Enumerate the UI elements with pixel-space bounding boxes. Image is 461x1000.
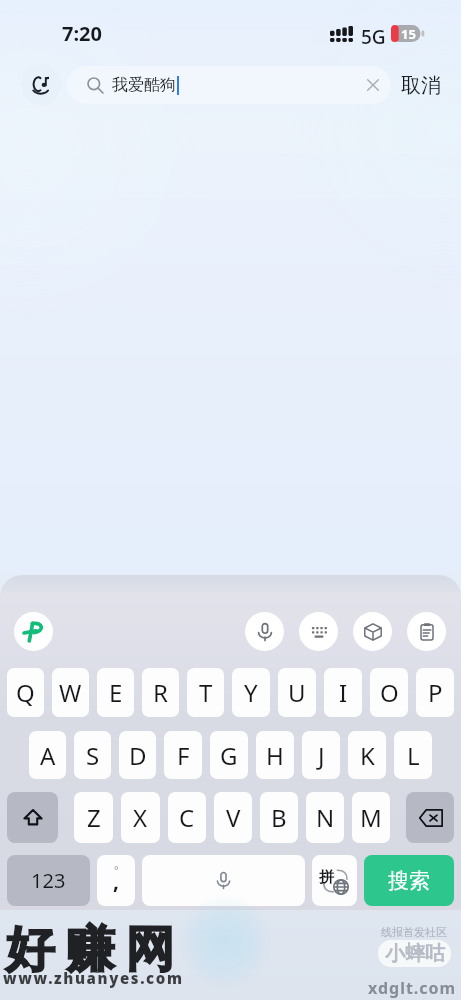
staticText: 7:20 bbox=[62, 20, 102, 47]
staticText: J bbox=[318, 739, 325, 772]
button[interactable]: M bbox=[352, 792, 390, 843]
staticText: F bbox=[177, 739, 190, 772]
staticText: K bbox=[360, 739, 375, 772]
staticText: C bbox=[179, 801, 195, 834]
button[interactable]: Language bbox=[312, 855, 357, 906]
staticText: 小蟀咕 bbox=[385, 941, 445, 966]
button[interactable]: E bbox=[97, 668, 134, 717]
staticText: U bbox=[288, 676, 306, 709]
button[interactable]: L bbox=[394, 731, 432, 779]
button[interactable]: Input method bbox=[14, 612, 53, 651]
button[interactable]: D bbox=[119, 731, 156, 779]
staticText: 线报首发社区 bbox=[381, 925, 447, 939]
button[interactable]: Emoji bbox=[353, 612, 392, 651]
staticText: , bbox=[113, 867, 119, 896]
button[interactable]: J bbox=[302, 731, 340, 779]
button[interactable]: Y bbox=[232, 668, 270, 717]
button[interactable]: Keyboard bbox=[299, 612, 338, 651]
staticText: 123 bbox=[31, 867, 66, 894]
staticText: 我爱酷狗 bbox=[112, 75, 176, 95]
button[interactable]: Clear bbox=[366, 78, 380, 92]
staticText: Q bbox=[16, 676, 35, 709]
staticText: Z bbox=[87, 801, 101, 834]
staticText: T bbox=[199, 676, 213, 709]
staticText: G bbox=[220, 739, 238, 772]
button[interactable]: 123 bbox=[7, 855, 90, 906]
button[interactable]: B bbox=[260, 792, 298, 843]
staticText: S bbox=[86, 739, 100, 772]
button[interactable]: 取消 bbox=[396, 59, 446, 111]
button[interactable]: G bbox=[210, 731, 248, 779]
staticText: O bbox=[380, 676, 399, 709]
staticText: Y bbox=[244, 676, 258, 709]
staticText: E bbox=[109, 676, 123, 709]
staticText: I bbox=[339, 676, 348, 709]
button[interactable]: Shift bbox=[7, 792, 58, 843]
staticText: L bbox=[407, 739, 420, 772]
button[interactable]: Clipboard bbox=[407, 612, 446, 651]
button[interactable]: 搜索 bbox=[364, 855, 454, 906]
staticText: 拼 bbox=[319, 868, 334, 887]
staticText: H bbox=[266, 739, 284, 772]
staticText: 取消 bbox=[401, 73, 441, 98]
staticText: D bbox=[129, 739, 147, 772]
staticText: 搜索 bbox=[388, 868, 430, 894]
staticText: 15 bbox=[401, 25, 416, 42]
button[interactable]: K bbox=[348, 731, 386, 779]
staticText: A bbox=[40, 739, 56, 772]
button[interactable]: Kugou bbox=[21, 65, 61, 105]
staticText: M bbox=[360, 801, 382, 834]
button[interactable]: U bbox=[278, 668, 316, 717]
staticText: X bbox=[133, 801, 148, 834]
button[interactable]: Z bbox=[74, 792, 113, 843]
staticText: P bbox=[428, 676, 443, 709]
button[interactable]: P bbox=[416, 668, 454, 717]
staticText: 5G bbox=[361, 24, 386, 50]
button[interactable]: T bbox=[187, 668, 224, 717]
button[interactable]: R bbox=[142, 668, 179, 717]
button[interactable]: Backspace bbox=[406, 792, 454, 843]
button[interactable]: A bbox=[29, 731, 66, 779]
button[interactable]: 我爱酷狗 bbox=[67, 66, 391, 104]
staticText: 好赚网 bbox=[0, 919, 180, 981]
button[interactable]: V bbox=[214, 792, 252, 843]
staticText: ° bbox=[114, 862, 119, 877]
button[interactable]: S bbox=[74, 731, 111, 779]
button[interactable]: Space / voice bbox=[142, 855, 305, 906]
staticText: B bbox=[271, 801, 287, 834]
button[interactable]: Voice input bbox=[245, 612, 284, 651]
staticText: xdglt.com bbox=[368, 977, 457, 999]
button[interactable]: Q bbox=[7, 668, 44, 717]
button[interactable]: W bbox=[52, 668, 89, 717]
staticText: W bbox=[59, 676, 82, 709]
button[interactable]: F bbox=[164, 731, 202, 779]
staticText: www.zhuanyes.com bbox=[3, 968, 184, 988]
button[interactable]: X bbox=[121, 792, 160, 843]
button[interactable]: C bbox=[168, 792, 206, 843]
button[interactable]: N bbox=[306, 792, 344, 843]
button[interactable]: I bbox=[324, 668, 362, 717]
button[interactable]: ° bbox=[97, 855, 135, 906]
button[interactable]: H bbox=[256, 731, 294, 779]
staticText: R bbox=[153, 676, 168, 709]
staticText: V bbox=[226, 801, 241, 834]
staticText: N bbox=[316, 801, 335, 834]
button[interactable]: O bbox=[370, 668, 408, 717]
